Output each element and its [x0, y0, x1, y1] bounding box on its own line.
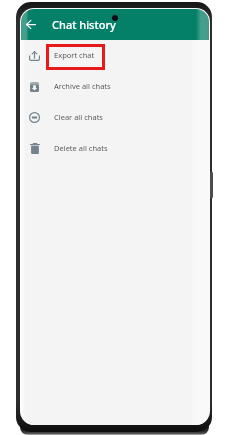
button[interactable]: Archive all chats: [21, 71, 209, 102]
staticText: Chat history: [52, 17, 116, 32]
staticText: Delete all chats: [54, 143, 108, 153]
staticText: Archive all chats: [54, 81, 111, 91]
staticText: Export chat: [54, 50, 95, 60]
button[interactable]: Delete all chats: [21, 133, 209, 164]
button[interactable]: Clear all chats: [21, 102, 209, 133]
button[interactable]: Export chat: [21, 40, 209, 71]
staticText: Clear all chats: [54, 112, 103, 122]
button[interactable]: Back: [21, 9, 40, 40]
